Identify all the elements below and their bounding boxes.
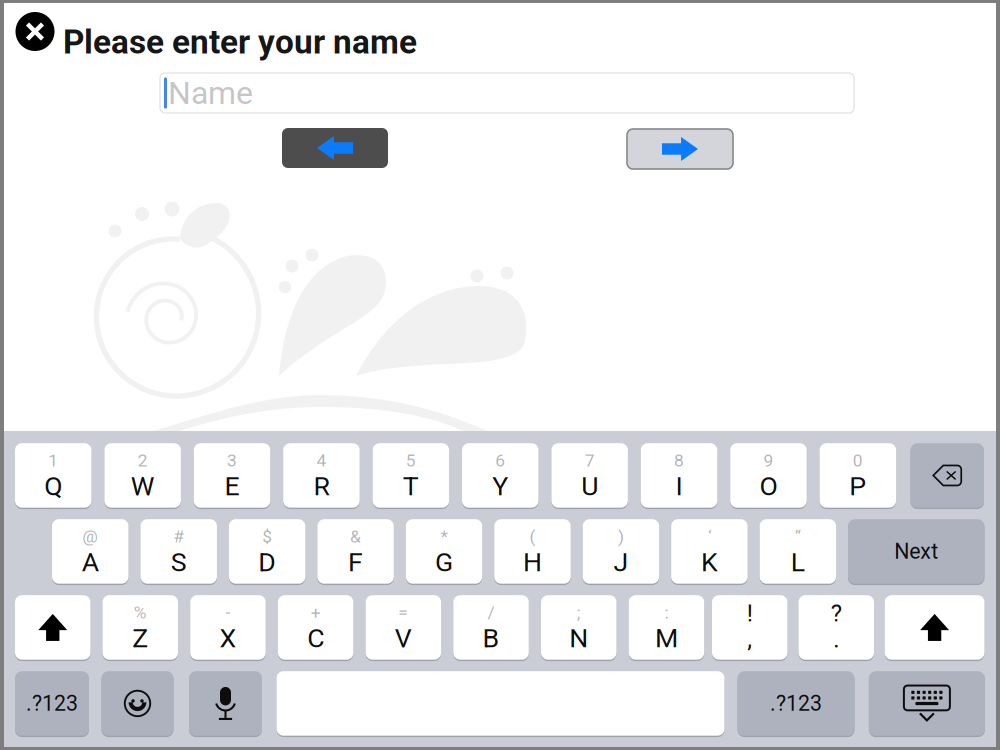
- button[interactable]: [101, 670, 173, 736]
- staticText: I: [676, 471, 683, 502]
- staticText: #: [173, 526, 184, 547]
- staticText: T: [403, 471, 419, 502]
- button[interactable]: Previous: [282, 128, 388, 168]
- staticText: 4: [316, 450, 326, 471]
- button[interactable]: #: [140, 518, 217, 584]
- staticText: H: [523, 547, 542, 578]
- staticText: .?123: [770, 691, 822, 716]
- button[interactable]: @: [52, 518, 128, 584]
- staticText: V: [395, 623, 412, 654]
- button[interactable]: *: [406, 518, 482, 584]
- staticText: ,: [747, 625, 752, 653]
- staticText: A: [82, 547, 99, 578]
- button[interactable]: Close: [13, 10, 56, 53]
- staticText: M: [655, 623, 678, 654]
- staticText: .: [833, 625, 839, 653]
- staticText: G: [435, 547, 453, 578]
- staticText: Z: [132, 623, 148, 654]
- staticText: N: [569, 623, 588, 654]
- button[interactable]: !: [712, 594, 787, 660]
- staticText: %: [134, 602, 147, 623]
- button[interactable]: 6: [462, 442, 538, 508]
- staticText: $: [262, 526, 272, 547]
- staticText: =: [398, 602, 408, 623]
- staticText: ?: [831, 599, 842, 627]
- staticText: :: [664, 602, 668, 623]
- staticText: X: [219, 623, 236, 654]
- button[interactable]: +: [278, 594, 353, 660]
- button[interactable]: 0: [820, 442, 896, 508]
- button[interactable]: 9: [730, 442, 807, 508]
- button[interactable]: :: [629, 594, 704, 660]
- button[interactable]: ;: [541, 594, 616, 660]
- button[interactable]: .?123: [15, 670, 89, 736]
- staticText: J: [613, 547, 628, 578]
- button[interactable]: $: [229, 518, 305, 584]
- staticText: S: [171, 547, 187, 578]
- staticText: L: [791, 547, 805, 578]
- button[interactable]: .?123: [737, 670, 854, 736]
- button[interactable]: 3: [194, 442, 270, 508]
- button[interactable]: [885, 594, 984, 660]
- button[interactable]: [189, 670, 262, 736]
- staticText: Name: [168, 74, 253, 112]
- staticText: /: [488, 602, 495, 623]
- button[interactable]: ?: [798, 594, 874, 660]
- staticText: F: [348, 547, 363, 578]
- staticText: Please enter your name: [63, 22, 417, 62]
- staticText: .?123: [26, 691, 78, 716]
- staticText: 1: [48, 450, 58, 471]
- staticText: 9: [763, 450, 773, 471]
- staticText: *: [441, 526, 448, 547]
- button[interactable]: [276, 670, 724, 736]
- button[interactable]: [869, 670, 985, 736]
- staticText: 6: [495, 450, 505, 471]
- button[interactable]: “: [760, 518, 836, 584]
- button[interactable]: ): [583, 518, 659, 584]
- button[interactable]: &: [317, 518, 394, 584]
- button[interactable]: ‘: [671, 518, 748, 584]
- button[interactable]: /: [453, 594, 529, 660]
- staticText: +: [311, 602, 321, 623]
- staticText: &: [350, 526, 361, 547]
- staticText: !: [747, 599, 753, 627]
- staticText: ): [618, 526, 624, 547]
- staticText: 3: [227, 450, 237, 471]
- staticText: Next: [894, 539, 938, 564]
- button[interactable]: =: [366, 594, 441, 660]
- staticText: -: [225, 602, 230, 623]
- button[interactable]: Next: [627, 129, 733, 169]
- staticText: W: [131, 471, 155, 502]
- button[interactable]: 7: [551, 442, 628, 508]
- staticText: ‘: [708, 526, 711, 547]
- button[interactable]: -: [190, 594, 266, 660]
- staticText: “: [795, 526, 801, 547]
- staticText: 7: [585, 450, 595, 471]
- staticText: Q: [44, 471, 62, 502]
- button[interactable]: 8: [641, 442, 717, 508]
- button[interactable]: 4: [283, 442, 360, 508]
- staticText: 8: [674, 450, 684, 471]
- button[interactable]: (: [494, 518, 571, 584]
- button[interactable]: %: [102, 594, 178, 660]
- staticText: D: [258, 547, 276, 578]
- staticText: E: [225, 471, 240, 502]
- staticText: 0: [853, 450, 863, 471]
- button[interactable]: 1: [15, 442, 91, 508]
- button[interactable]: 2: [104, 442, 181, 508]
- staticText: Y: [492, 471, 508, 502]
- staticText: (: [529, 526, 535, 547]
- staticText: B: [483, 623, 500, 654]
- staticText: 5: [406, 450, 416, 471]
- staticText: K: [701, 547, 718, 578]
- button[interactable]: Next: [848, 518, 984, 584]
- staticText: R: [313, 471, 329, 502]
- staticText: P: [849, 471, 866, 502]
- button[interactable]: [15, 594, 90, 660]
- staticText: C: [307, 623, 324, 654]
- button[interactable]: 5: [373, 442, 449, 508]
- staticText: 2: [138, 450, 148, 471]
- button[interactable]: [910, 442, 984, 508]
- staticText: @: [82, 526, 98, 547]
- staticText: O: [759, 471, 777, 502]
